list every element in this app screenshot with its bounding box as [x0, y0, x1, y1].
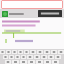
- button[interactable]: R: [18, 50, 23, 54]
- button[interactable]: [38, 10, 62, 17]
- button[interactable]: [1, 0, 63, 9]
- button[interactable]: Z: [5, 60, 11, 64]
- button[interactable]: [15, 39, 33, 43]
- button[interactable]: U: [37, 50, 43, 54]
- button[interactable]: T: [24, 50, 29, 54]
- button[interactable]: P: [58, 50, 64, 54]
- button[interactable]: K: [48, 55, 54, 59]
- button[interactable]: X: [12, 60, 19, 64]
- button[interactable]: F: [21, 55, 26, 59]
- button[interactable]: O: [51, 50, 57, 54]
- button[interactable]: [9, 11, 25, 17]
- button[interactable]: G: [27, 55, 33, 59]
- button[interactable]: L: [55, 55, 61, 59]
- button[interactable]: A: [3, 55, 8, 59]
- button[interactable]: D: [15, 55, 20, 59]
- button[interactable]: W: [6, 50, 11, 54]
- button[interactable]: E: [12, 50, 17, 54]
- button[interactable]: J: [41, 55, 47, 59]
- button[interactable]: I: [44, 50, 50, 54]
- button[interactable]: Q: [0, 50, 5, 54]
- button[interactable]: N: [44, 60, 51, 64]
- button[interactable]: V: [28, 60, 35, 64]
- button[interactable]: C: [20, 60, 27, 64]
- button[interactable]: B: [36, 60, 43, 64]
- button[interactable]: Y: [30, 50, 36, 54]
- button[interactable]: H: [34, 55, 40, 59]
- button[interactable]: S: [9, 55, 14, 59]
- button[interactable]: M: [52, 60, 59, 64]
- button[interactable]: Attachment: [2, 11, 8, 17]
